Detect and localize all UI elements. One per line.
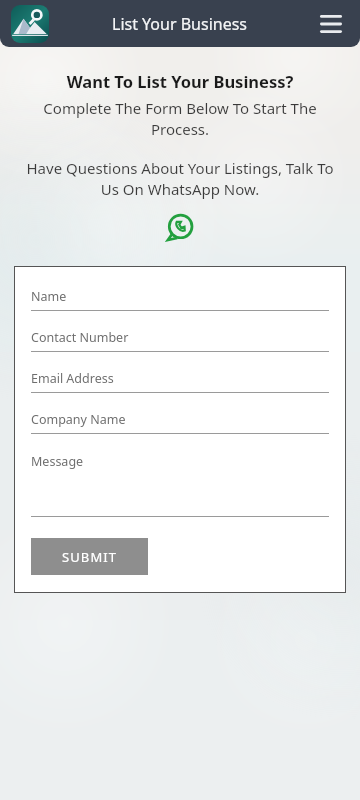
staticText: Complete The Form Below To Start The Pro… (26, 98, 334, 140)
button[interactable]: SUBMIT (31, 538, 148, 575)
button[interactable]: Chat on WhatsApp (164, 212, 196, 244)
staticText: Have Questions About Your Listings, Talk… (18, 158, 342, 200)
button[interactable]: App logo, home (11, 5, 49, 43)
staticText: Email Address (31, 370, 114, 387)
staticText: List Your Business (112, 13, 248, 35)
button[interactable]: Name (31, 288, 329, 329)
button[interactable]: Email Address (31, 370, 329, 411)
button[interactable]: Open navigation menu (314, 7, 348, 41)
staticText: Name (31, 288, 67, 305)
staticText: Want To List Your Business? (14, 70, 346, 92)
staticText: Contact Number (31, 329, 129, 346)
button[interactable]: Contact Number (31, 329, 329, 370)
staticText: SUBMIT (62, 548, 118, 566)
button[interactable]: Company Name (31, 411, 329, 452)
staticText: Company Name (31, 411, 126, 428)
staticText: Message (31, 453, 84, 470)
